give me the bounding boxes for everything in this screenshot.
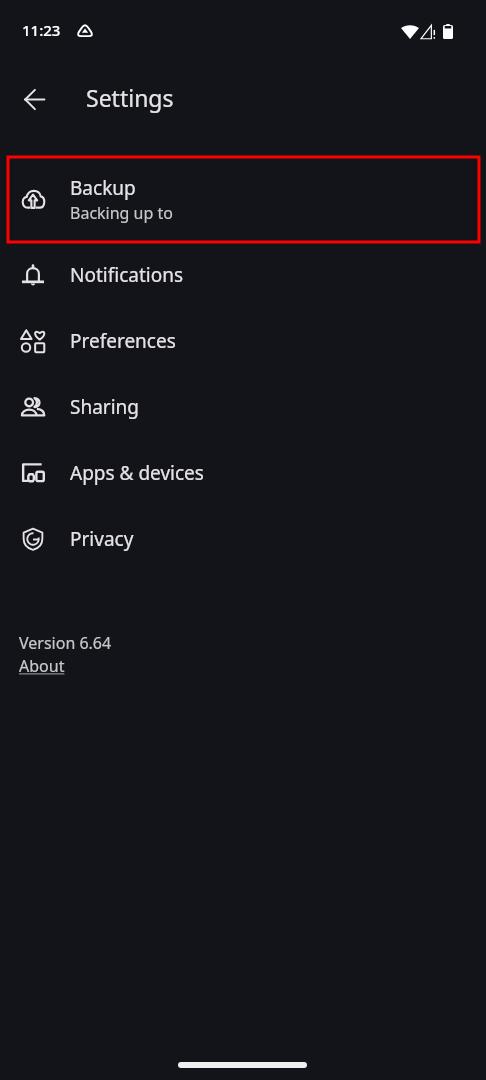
staticText: Version 6.64 — [19, 632, 112, 654]
button[interactable]: Privacy — [0, 506, 486, 572]
staticText: Preferences — [70, 328, 176, 354]
button[interactable]: Back — [10, 75, 58, 123]
staticText: Backup — [70, 175, 136, 201]
button[interactable]: Notifications — [0, 242, 486, 308]
button[interactable]: Backup — [0, 157, 486, 242]
button[interactable]: Preferences — [0, 308, 486, 374]
button[interactable]: Sharing — [0, 374, 486, 440]
staticText: Apps & devices — [70, 460, 204, 486]
staticText: Privacy — [70, 526, 134, 552]
staticText: Settings — [86, 82, 174, 113]
staticText: Sharing — [70, 394, 140, 420]
staticText: 11:23 — [22, 20, 61, 40]
staticText: Backing up to — [70, 202, 173, 224]
staticText: Notifications — [70, 262, 184, 288]
button[interactable]: Apps & devices — [0, 440, 486, 506]
button[interactable]: About — [19, 655, 65, 677]
